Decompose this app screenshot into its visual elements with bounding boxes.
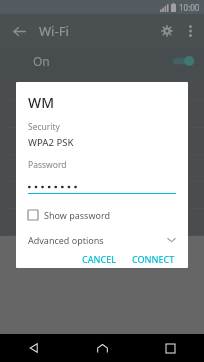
button[interactable]: Recent apps: [136, 334, 204, 362]
button[interactable]: More options: [179, 20, 201, 42]
button[interactable]: On: [0, 48, 204, 74]
button[interactable]: Back: [8, 20, 30, 42]
other: Wi-Fi toggle: [170, 54, 196, 68]
staticText: WM: [28, 93, 55, 112]
button[interactable]: Settings: [155, 19, 179, 43]
button[interactable]: [28, 179, 176, 194]
staticText: On: [33, 53, 50, 69]
button[interactable]: Advanced options: [28, 231, 176, 249]
staticText: Wi-Fi: [39, 22, 69, 40]
button[interactable]: CONNECT: [127, 249, 180, 268]
staticText: CANCEL: [82, 253, 117, 264]
button[interactable]: Home: [68, 334, 136, 362]
staticText: Show password: [44, 209, 110, 221]
staticText: Advanced options: [28, 234, 104, 246]
button[interactable]: Back: [0, 334, 68, 362]
staticText: Security: [28, 121, 60, 133]
staticText: WPA2 PSK: [28, 136, 74, 149]
button[interactable]: Show password: [28, 207, 188, 223]
staticText: 10:00: [179, 2, 200, 13]
staticText: Password: [28, 159, 67, 171]
staticText: CONNECT: [132, 253, 175, 264]
button[interactable]: CANCEL: [77, 249, 122, 268]
